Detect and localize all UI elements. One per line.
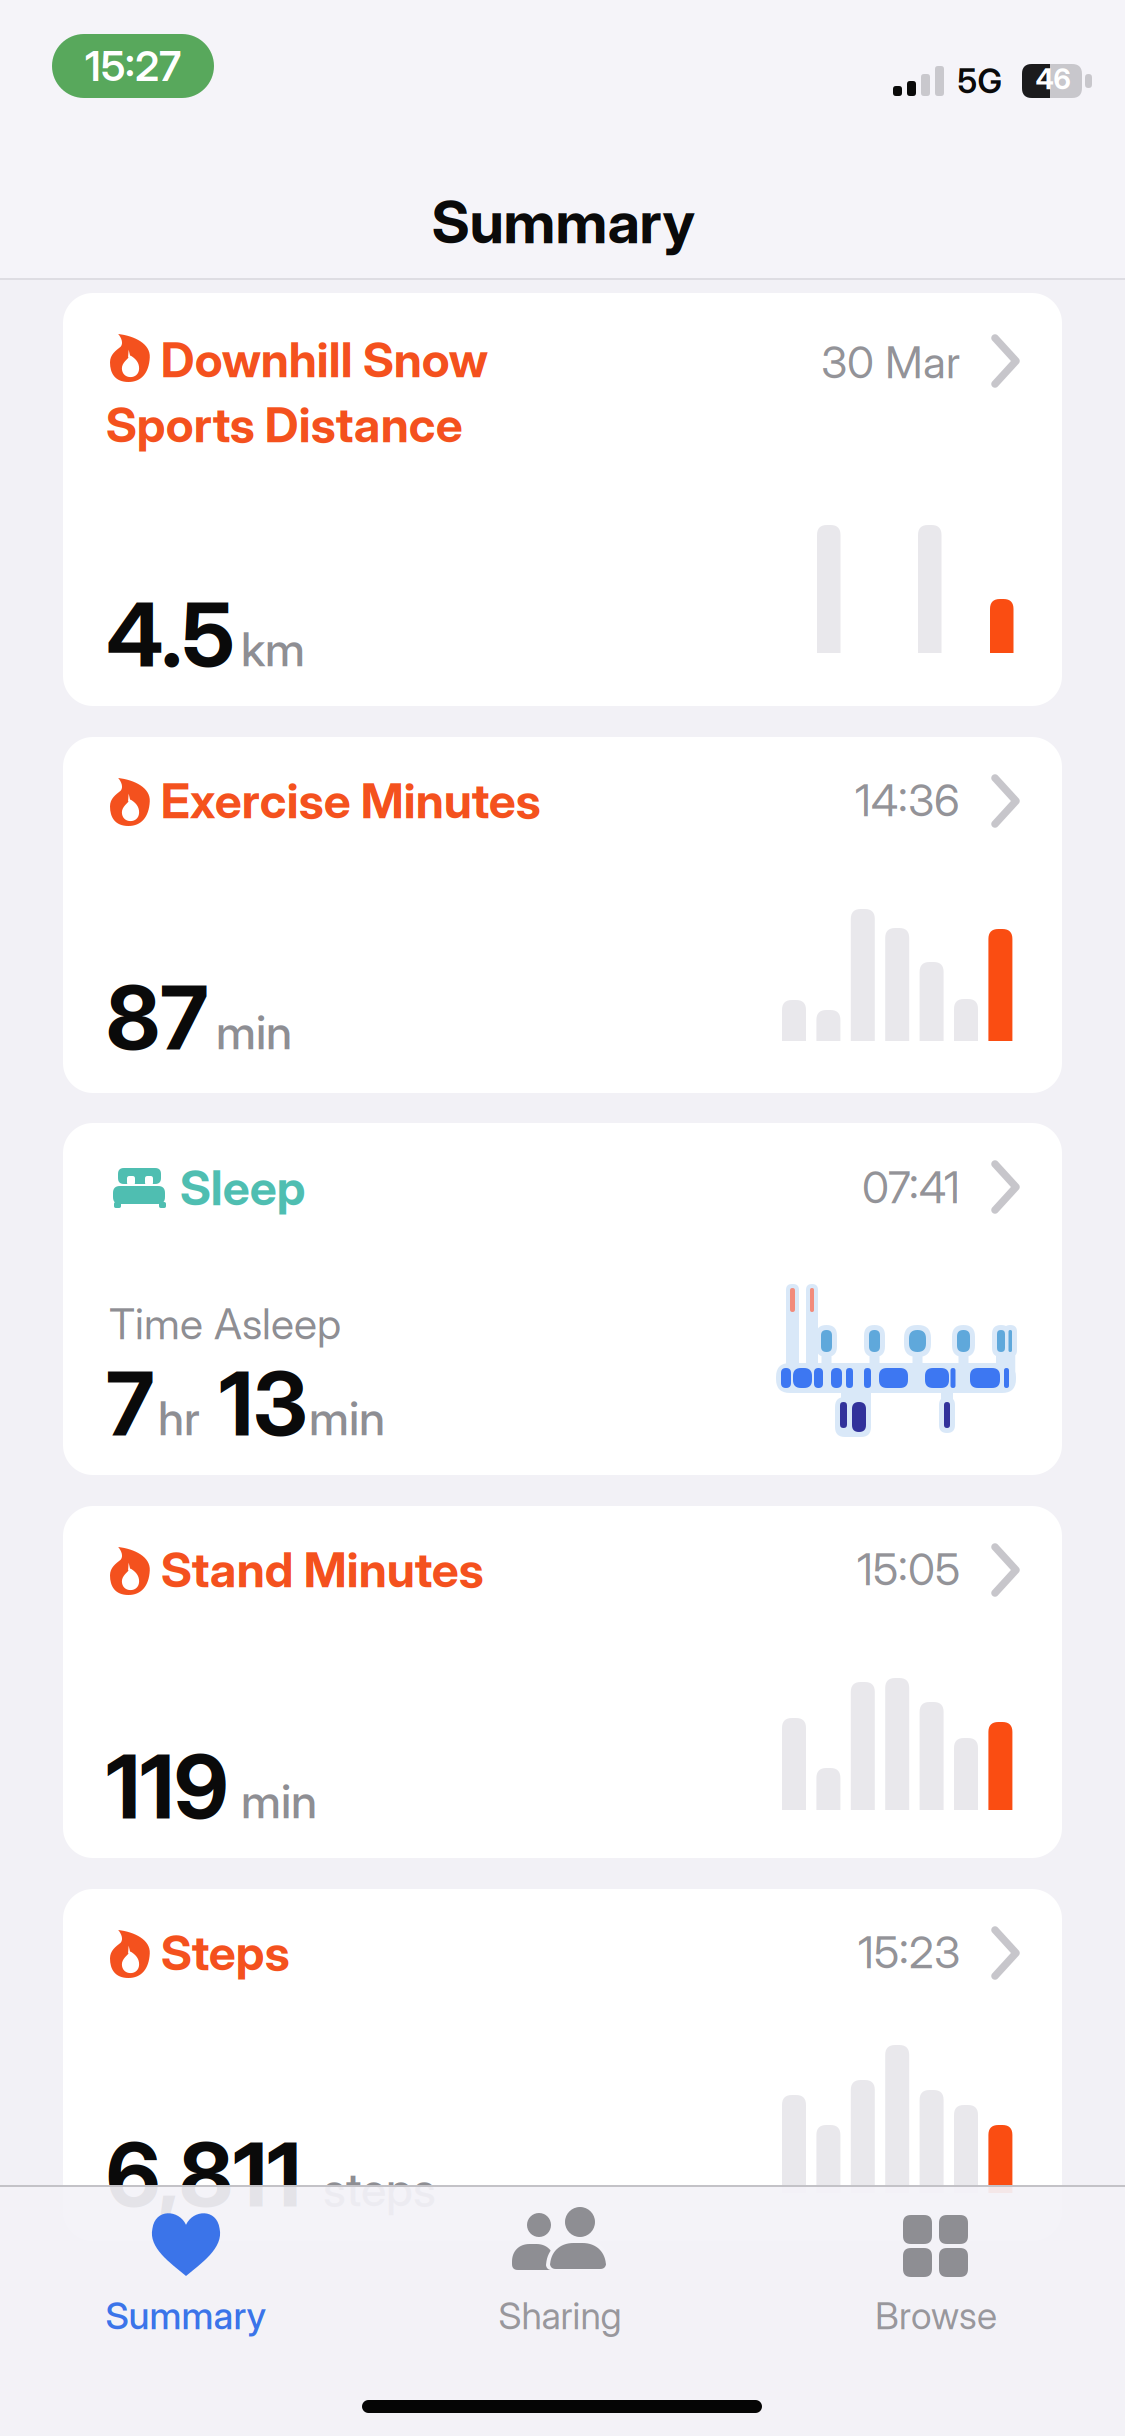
- staticText: steps: [323, 2161, 436, 2217]
- staticText: 15:23: [858, 1926, 960, 1979]
- staticText: min: [241, 1773, 317, 1829]
- button[interactable]: Downhill Snow: [63, 293, 1062, 706]
- staticText: 46: [1035, 62, 1070, 96]
- staticText: km: [241, 621, 305, 677]
- button[interactable]: Steps: [63, 1889, 1062, 2241]
- staticText: Sports Distance: [106, 396, 463, 454]
- staticText: min: [309, 1390, 385, 1446]
- staticText: 5G: [957, 61, 1001, 101]
- staticText: 30 Mar: [821, 336, 960, 389]
- staticText: 119: [106, 1733, 228, 1840]
- staticText: Steps: [161, 1924, 290, 1982]
- button[interactable]: Sleep: [63, 1123, 1062, 1475]
- button[interactable]: Sharing: [450, 2186, 670, 2346]
- staticText: Sleep: [180, 1159, 306, 1217]
- staticText: Summary: [431, 186, 694, 257]
- staticText: 6,811: [106, 2121, 301, 2228]
- staticText: 4.5: [106, 581, 235, 688]
- staticText: 07:41: [862, 1161, 960, 1214]
- staticText: 15:05: [857, 1543, 960, 1596]
- staticText: 15:27: [85, 41, 181, 91]
- staticText: Time Asleep: [109, 1298, 341, 1349]
- staticText: 14:36: [855, 774, 960, 827]
- staticText: min: [216, 1004, 292, 1060]
- staticText: 7: [106, 1350, 154, 1457]
- staticText: 13: [219, 1350, 308, 1457]
- staticText: Stand Minutes: [161, 1541, 484, 1599]
- staticText: Downhill Snow: [161, 331, 488, 389]
- staticText: hr: [158, 1390, 200, 1446]
- button[interactable]: Browse: [826, 2186, 1046, 2346]
- button[interactable]: 15:27: [52, 34, 214, 98]
- staticText: Browse: [875, 2293, 997, 2338]
- staticText: Exercise Minutes: [161, 772, 541, 830]
- staticText: Summary: [105, 2293, 266, 2338]
- button[interactable]: Summary: [76, 2186, 296, 2346]
- button[interactable]: Exercise Minutes: [63, 737, 1062, 1093]
- button[interactable]: Stand Minutes: [63, 1506, 1062, 1858]
- staticText: 87: [106, 964, 208, 1071]
- staticText: Sharing: [498, 2293, 621, 2338]
